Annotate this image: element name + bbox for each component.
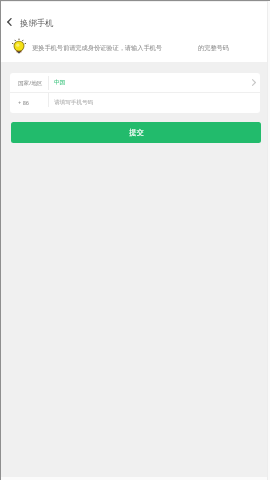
- button[interactable]: Back: [0, 10, 17, 34]
- staticText: 换绑手机: [20, 18, 54, 29]
- button[interactable]: 国家/地区: [10, 73, 260, 92]
- staticText: 更换手机号前请完成身份证验证，请输入手机号: [32, 44, 162, 52]
- staticText: 中国: [54, 79, 66, 86]
- staticText: 请填写手机号码: [54, 99, 94, 106]
- button[interactable]: 提交: [11, 122, 261, 143]
- staticText: 的完整号码: [198, 44, 229, 52]
- staticText: 国家/地区: [18, 79, 43, 87]
- staticText: 提交: [129, 128, 144, 137]
- button[interactable]: + 86: [10, 93, 260, 113]
- staticText: + 86: [18, 99, 30, 107]
